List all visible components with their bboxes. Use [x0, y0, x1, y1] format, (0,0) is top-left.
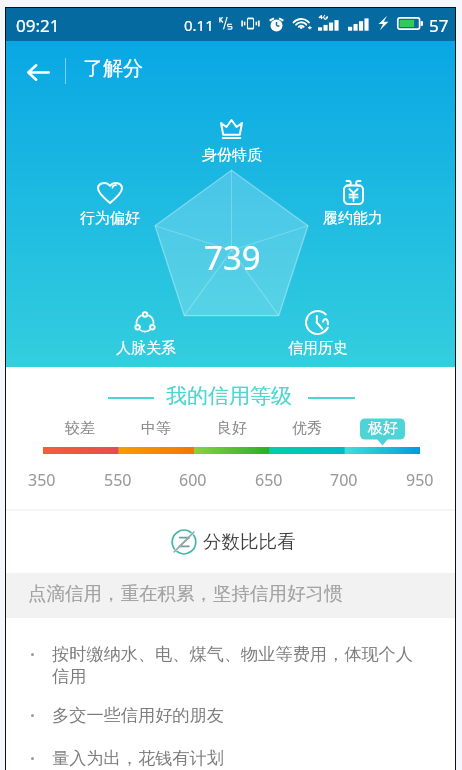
button[interactable]: 极好 [360, 418, 405, 439]
button[interactable]: 量入为出，花钱有计划 [31, 747, 416, 769]
button[interactable]: 人脉关系 [101, 339, 191, 358]
staticText: 700 [330, 469, 358, 491]
button[interactable]: 身份特质 [187, 146, 277, 165]
staticText: 中等 [141, 419, 171, 438]
staticText: 良好 [217, 419, 247, 438]
staticText: 09:21 [16, 14, 60, 37]
staticText: 优秀 [292, 419, 322, 438]
button[interactable]: 分数比比看 [6, 511, 455, 573]
staticText: 人脉关系 [101, 339, 191, 358]
staticText: 57 [429, 14, 449, 37]
staticText: 量入为出，花钱有计划 [52, 747, 224, 769]
staticText: 950 [406, 469, 434, 491]
button[interactable]: 按时缴纳水、电、煤气、物业等费用，体现个人信用 [31, 643, 416, 687]
staticText: 按时缴纳水、电、煤气、物业等费用，体现个人信用 [52, 643, 416, 687]
staticText: 较差 [65, 419, 95, 438]
staticText: 行为偏好 [65, 209, 155, 228]
staticText: 600 [179, 469, 207, 491]
staticText: 550 [104, 469, 132, 491]
staticText: 信用历史 [273, 339, 363, 358]
staticText: 350 [28, 469, 56, 491]
staticText: 点滴信用，重在积累，坚持信用好习惯 [28, 582, 343, 605]
staticText: 分数比比看 [203, 530, 296, 553]
staticText: 极好 [368, 419, 398, 438]
staticText: 身份特质 [187, 146, 277, 165]
staticText: 我的信用等级 [166, 383, 292, 409]
button[interactable]: 信用历史 [273, 339, 363, 358]
button[interactable]: 履约能力 [308, 209, 398, 228]
staticText: 履约能力 [308, 209, 398, 228]
staticText: 0.11 [184, 15, 214, 35]
staticText: 650 [255, 469, 283, 491]
button[interactable]: 多交一些信用好的朋友 [31, 704, 416, 726]
staticText: 多交一些信用好的朋友 [52, 704, 224, 726]
button[interactable]: Back [20, 54, 56, 90]
staticText: 了解分 [83, 56, 143, 81]
button[interactable]: 行为偏好 [65, 209, 155, 228]
staticText: 739 [204, 235, 261, 280]
